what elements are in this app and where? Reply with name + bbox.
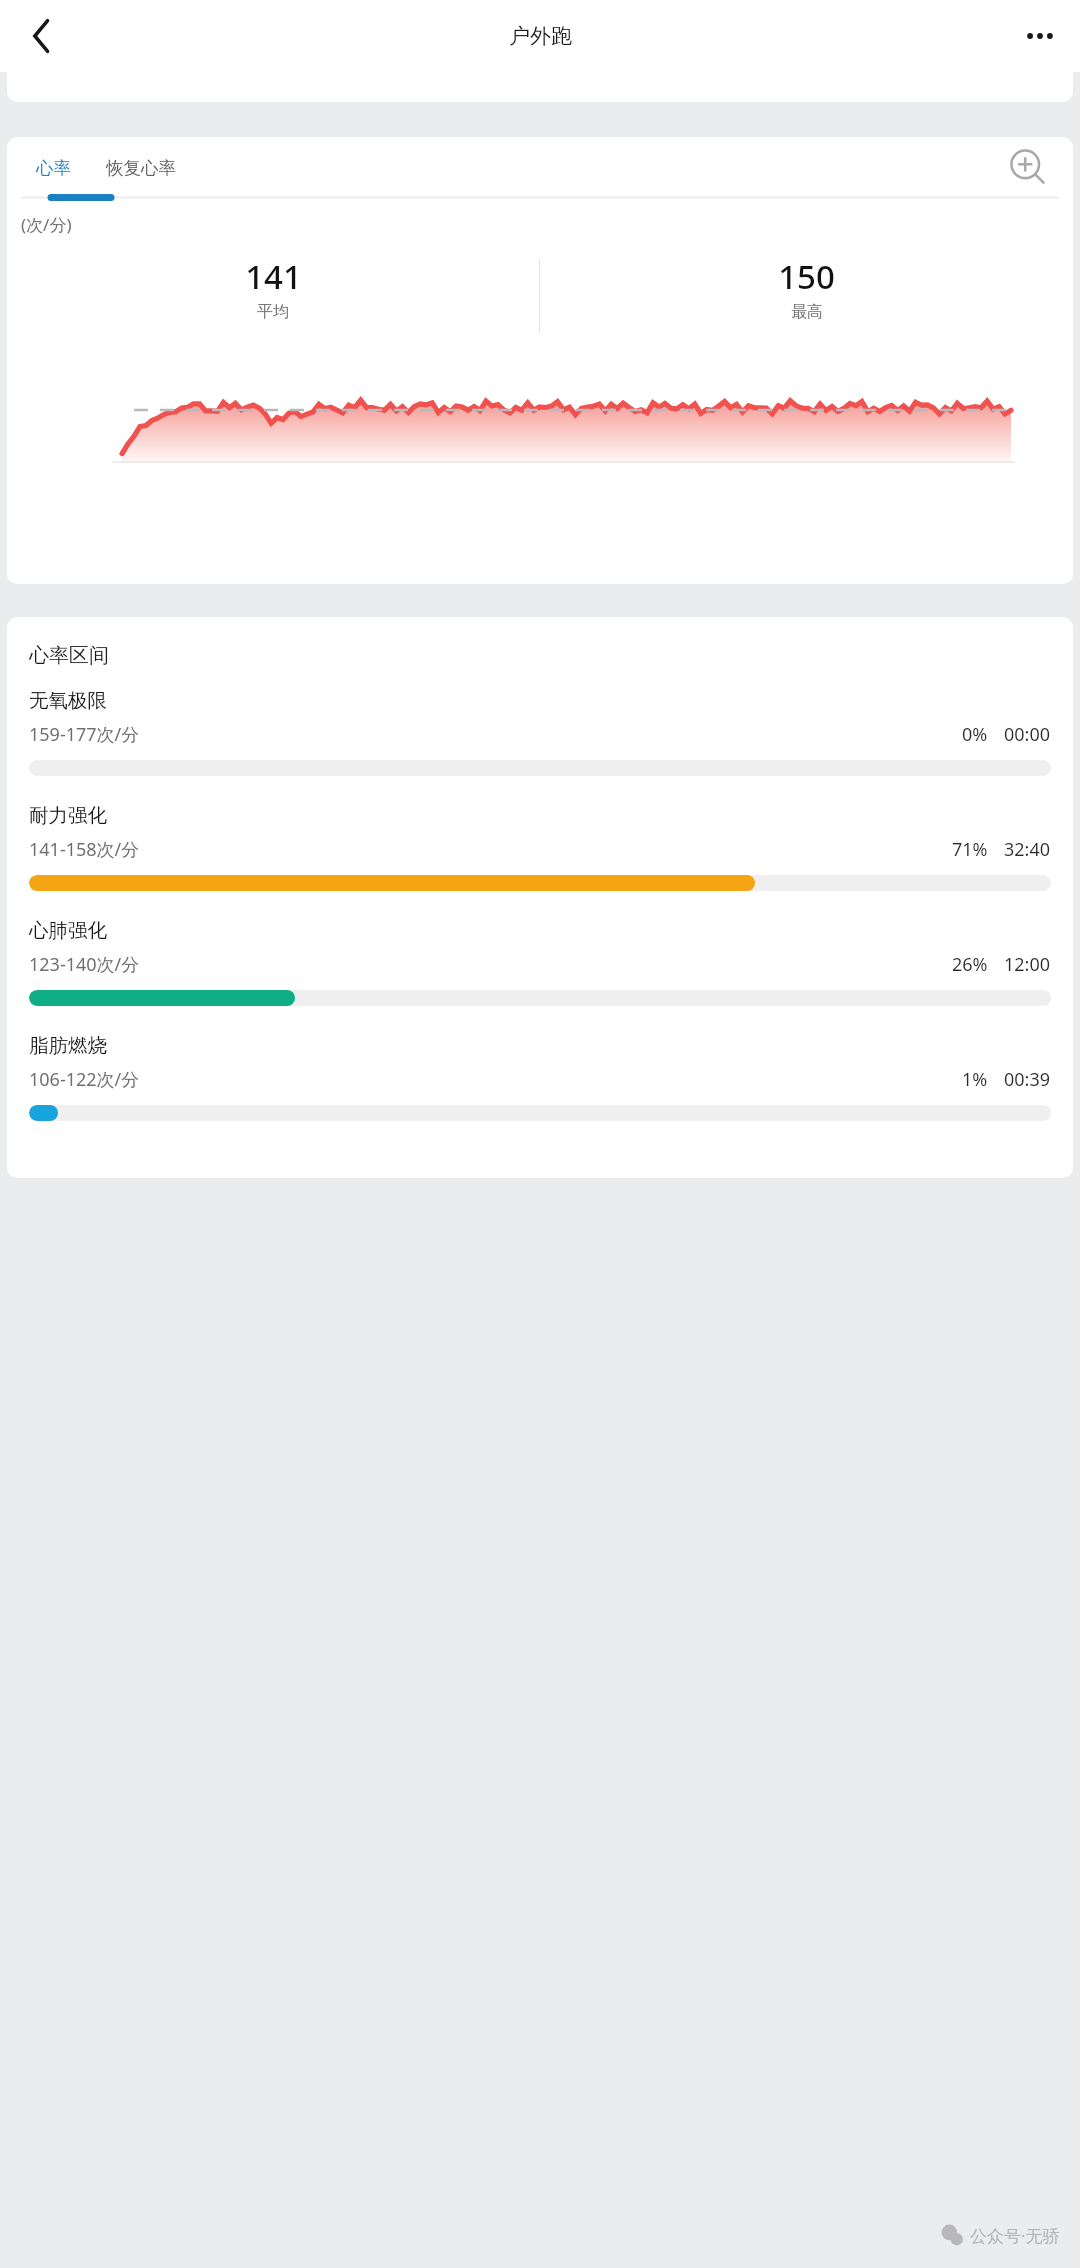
button[interactable]: 耐力强化 bbox=[7, 803, 1073, 918]
staticText: (次/分) bbox=[21, 213, 72, 236]
staticText: 户外跑 bbox=[509, 23, 572, 49]
staticText: 71% bbox=[952, 837, 988, 862]
button[interactable]: Back bbox=[6, 4, 70, 68]
staticText: 32:40 bbox=[1004, 837, 1051, 862]
staticText: 12:00 bbox=[1004, 952, 1051, 977]
button[interactable]: More options bbox=[1008, 4, 1072, 68]
staticText: 恢复心率 bbox=[106, 157, 176, 179]
staticText: 26% bbox=[952, 952, 988, 977]
staticText: 1% bbox=[962, 1067, 988, 1092]
staticText: 平均 bbox=[257, 302, 289, 322]
staticText: 141 bbox=[245, 254, 302, 299]
staticText: 公众号·无骄 bbox=[970, 2224, 1060, 2247]
button[interactable]: 无氧极限 bbox=[7, 688, 1073, 803]
staticText: 脂肪燃烧 bbox=[29, 1033, 107, 1058]
staticText: 141-158次/分 bbox=[29, 837, 140, 862]
staticText: 00:00 bbox=[1004, 722, 1051, 747]
staticText: 0% bbox=[962, 722, 988, 747]
staticText: 心肺强化 bbox=[29, 918, 107, 943]
staticText: 耐力强化 bbox=[29, 803, 107, 828]
staticText: 无氧极限 bbox=[29, 688, 107, 713]
button[interactable]: 心肺强化 bbox=[7, 918, 1073, 1033]
button[interactable]: 恢复心率 bbox=[104, 153, 178, 183]
button[interactable]: 脂肪燃烧 bbox=[7, 1033, 1073, 1148]
staticText: 心率区间 bbox=[29, 643, 109, 668]
staticText: 00:39 bbox=[1004, 1067, 1051, 1092]
button[interactable]: 心率 bbox=[34, 153, 73, 183]
staticText: 123-140次/分 bbox=[29, 952, 140, 977]
staticText: 最高 bbox=[791, 302, 823, 322]
staticText: 心率 bbox=[36, 157, 71, 179]
button[interactable]: Zoom in bbox=[1005, 145, 1051, 191]
staticText: 150 bbox=[778, 254, 835, 299]
staticText: 106-122次/分 bbox=[29, 1067, 140, 1092]
staticText: 159-177次/分 bbox=[29, 722, 140, 747]
